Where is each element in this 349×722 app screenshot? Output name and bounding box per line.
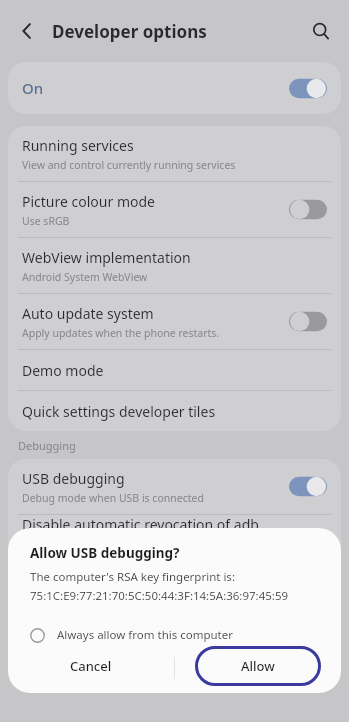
staticText: Apply updates when the phone restarts. — [22, 326, 220, 340]
button[interactable]: USB debugging — [8, 459, 341, 514]
button[interactable] — [289, 199, 327, 220]
button[interactable]: Allow — [174, 650, 341, 693]
staticText: Auto update system — [22, 304, 154, 323]
staticText: Android System WebView — [22, 270, 148, 284]
button[interactable]: Demo mode — [8, 350, 341, 390]
button[interactable]: Always allow from this computer — [8, 620, 341, 650]
staticText: Wireless debugging — [22, 581, 153, 600]
button[interactable] — [289, 311, 327, 332]
staticText: Developer options — [52, 20, 207, 43]
staticText: View and control currently running servi… — [22, 158, 236, 172]
staticText: USB debugging — [22, 469, 125, 488]
staticText: Quick settings developer tiles — [22, 402, 216, 421]
staticText: Debug mode when USB is connected — [22, 491, 204, 505]
staticText: Demo mode — [22, 361, 104, 380]
button[interactable]: Quick settings developer tiles — [8, 391, 341, 431]
button[interactable] — [289, 476, 327, 497]
button[interactable]: On — [8, 62, 341, 114]
staticText: Running services — [22, 136, 134, 155]
button[interactable] — [289, 78, 327, 99]
button[interactable]: Wireless debugging — [8, 571, 341, 626]
button[interactable]: Picture colour mode — [8, 182, 341, 237]
staticText: 75:1C:E9:77:21:70:5C:50:44:3F:14:5A:36:9… — [30, 588, 289, 604]
button[interactable]: Disable automatic revocation of adb auth… — [8, 515, 341, 570]
button[interactable]: Cancel — [8, 650, 174, 693]
staticText: Allow — [241, 657, 275, 675]
staticText: Always allow from this computer — [57, 627, 234, 643]
staticText: The computer's RSA key fingerprint is: — [30, 569, 235, 585]
button[interactable]: Search — [303, 13, 339, 49]
button[interactable]: Running services — [8, 126, 341, 181]
button[interactable]: Auto update system — [8, 294, 341, 349]
staticText: Picture colour mode — [22, 192, 155, 211]
staticText: WebView implementation — [22, 248, 191, 267]
staticText: Debugging — [18, 438, 76, 453]
staticText: Cancel — [70, 657, 112, 675]
staticText: Allow USB debugging? — [30, 544, 180, 562]
staticText: systems that haven't reconnected within … — [22, 556, 279, 570]
staticText: On — [22, 78, 44, 98]
button[interactable]: Back — [10, 14, 44, 48]
button[interactable]: WebView implementation — [8, 238, 341, 293]
staticText: Use sRGB — [22, 214, 70, 228]
staticText: Disable automatic revocation of adb auth… — [22, 515, 279, 553]
